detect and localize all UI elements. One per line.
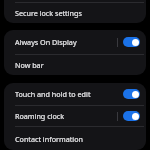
button[interactable]: Always On Display toggle, on [123, 37, 140, 47]
staticText: Always On Display [15, 37, 117, 47]
staticText: Secure lock settings [15, 8, 140, 18]
button[interactable]: Contact information [4, 127, 146, 150]
button[interactable]: Always On Display [4, 30, 146, 54]
button[interactable]: Roaming clock toggle, on [123, 111, 140, 121]
button[interactable]: Roaming clock [4, 106, 146, 126]
staticText: Touch and hold to edit [15, 89, 117, 99]
button[interactable]: Touch and hold to edit toggle, on [123, 89, 140, 99]
staticText: Roaming clock [15, 111, 117, 121]
button[interactable]: Now bar [4, 55, 146, 75]
button[interactable]: Secure lock settings [4, 3, 146, 23]
button[interactable]: Touch and hold to edit [4, 83, 146, 105]
staticText: Now bar [15, 60, 140, 70]
staticText: Contact information [15, 134, 140, 144]
